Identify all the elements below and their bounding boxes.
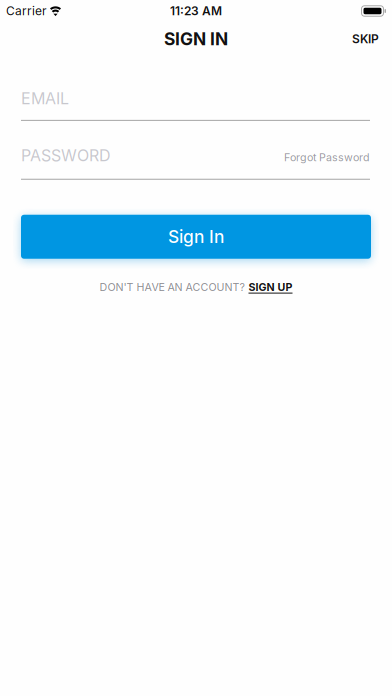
staticText: SKIP xyxy=(352,32,379,46)
staticText: SIGN IN xyxy=(164,29,228,49)
staticText: Sign In xyxy=(168,226,224,247)
button[interactable]: SIGN UP xyxy=(248,281,292,293)
button[interactable]: Sign In xyxy=(21,215,371,259)
staticText: SIGN UP xyxy=(248,281,292,293)
staticText: DON'T HAVE AN ACCOUNT? xyxy=(99,281,244,293)
staticText: PASSWORD xyxy=(21,146,111,165)
staticText: Forgot Password xyxy=(284,151,370,164)
staticText: 11:23 AM xyxy=(170,4,222,18)
staticText: Carrier xyxy=(6,4,47,18)
button[interactable]: Forgot Password xyxy=(284,149,370,162)
staticText: EMAIL xyxy=(21,89,69,108)
button[interactable]: SKIP xyxy=(352,32,379,46)
